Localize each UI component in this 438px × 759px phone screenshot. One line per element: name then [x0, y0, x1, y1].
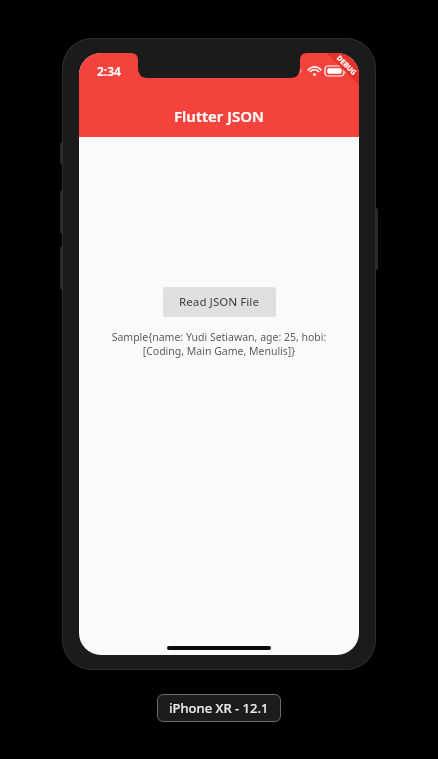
staticText: Read JSON File: [179, 294, 260, 310]
staticText: Sample{name: Yudi Setiawan, age: 25, hob…: [95, 330, 343, 358]
staticText: DEBUG: [334, 54, 359, 78]
other: Debug banner: [313, 53, 359, 99]
button[interactable]: Read JSON File: [163, 287, 276, 317]
staticText: iPhone XR - 12.1: [169, 699, 269, 717]
staticText: Flutter JSON: [174, 106, 264, 126]
button[interactable]: iPhone XR - 12.1: [157, 694, 281, 722]
staticText: 2:34: [97, 63, 121, 79]
